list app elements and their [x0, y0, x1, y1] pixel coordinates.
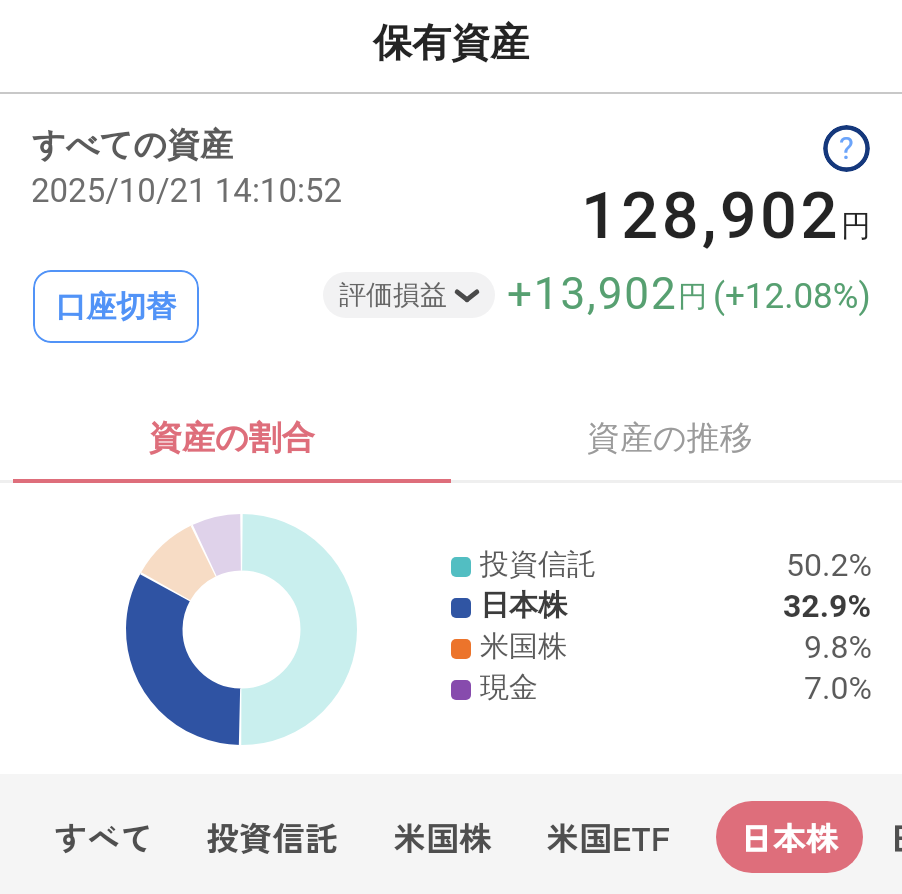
staticText: 保有資産 [373, 18, 529, 67]
button[interactable]: 口座切替 [33, 270, 199, 343]
staticText: 128,902 [581, 178, 841, 254]
staticText: (+12.08%) [713, 276, 871, 317]
staticText: 口座切替 [56, 288, 176, 326]
staticText: すべての資産 [32, 124, 234, 166]
staticText: ? [839, 130, 854, 166]
button[interactable]: 投資信託 [182, 801, 362, 873]
staticText: 50.2% [786, 546, 872, 584]
button[interactable]: 米国ETF [522, 801, 694, 873]
button[interactable]: すべて [30, 801, 177, 873]
button[interactable]: 日 [865, 801, 902, 873]
button[interactable]: 現金 [451, 667, 872, 708]
staticText: 円 [841, 207, 871, 245]
staticText: 現金 [480, 669, 538, 706]
staticText: 資産の推移 [587, 417, 753, 459]
button[interactable]: 米国株 [451, 626, 872, 667]
staticText: 資産の割合 [149, 417, 315, 459]
staticText: 米国株 [480, 628, 567, 665]
staticText: すべて [54, 813, 153, 861]
staticText: 32.9% [783, 587, 872, 625]
staticText: 投資信託 [206, 813, 338, 861]
staticText: 2025/10/21 14:10:52 [31, 171, 343, 210]
button[interactable]: 米国株 [369, 801, 516, 873]
staticText: 投資信託 [480, 546, 596, 583]
button[interactable]: ヘルプ [823, 125, 870, 172]
button[interactable]: 日本株 [716, 801, 863, 873]
staticText: 米国株 [393, 813, 492, 861]
staticText: 日本株 [740, 813, 839, 861]
staticText: 円 [678, 278, 707, 315]
staticText: 9.8% [804, 628, 872, 666]
button[interactable]: 資産の推移 [451, 396, 889, 480]
staticText: 米国ETF [546, 813, 670, 861]
button[interactable]: 資産の割合 [13, 396, 451, 480]
staticText: 7.0% [804, 669, 872, 707]
staticText: 日本株 [480, 587, 567, 624]
staticText: 日 [889, 813, 902, 861]
button[interactable]: 評価損益 [323, 272, 495, 318]
button[interactable]: 投資信託 [451, 544, 872, 585]
button[interactable]: 日本株 [451, 585, 872, 626]
staticText: 評価損益 [339, 278, 447, 312]
staticText: +13,902 [507, 268, 678, 320]
